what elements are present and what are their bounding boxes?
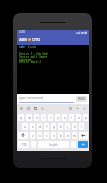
- button[interactable]: type command: [19, 95, 74, 103]
- staticText: e: [36, 116, 38, 120]
- button[interactable]: f: [44, 123, 49, 130]
- button[interactable]: y: [55, 114, 60, 121]
- button[interactable]: c: [44, 132, 49, 139]
- staticText: RUN: [78, 97, 85, 101]
- button[interactable]: h: [58, 123, 63, 130]
- button[interactable]: Enter: [78, 141, 88, 148]
- button[interactable]: s: [30, 123, 35, 130]
- button[interactable]: More: [75, 106, 80, 111]
- staticText: x: [39, 134, 41, 138]
- button[interactable]: q: [18, 114, 24, 121]
- staticText: ABB: [19, 37, 27, 42]
- button[interactable]: z: [30, 132, 35, 139]
- staticText: f: [46, 125, 48, 129]
- button[interactable]: Back: [19, 106, 24, 111]
- staticText: g: [53, 125, 55, 129]
- staticText: m: [73, 134, 76, 138]
- staticText: y: [57, 116, 59, 120]
- staticText: h: [60, 125, 62, 129]
- staticText: r: [43, 116, 45, 120]
- staticText: j: [67, 125, 68, 129]
- button[interactable]: p: [83, 114, 88, 121]
- button[interactable]: Clipboard: [33, 106, 38, 111]
- staticText: k: [74, 125, 76, 129]
- button[interactable]: a: [22, 123, 28, 130]
- button[interactable]: .: [71, 141, 76, 148]
- staticText: a: [24, 125, 26, 129]
- button[interactable]: g: [51, 123, 56, 130]
- button[interactable]: n: [65, 132, 70, 139]
- button[interactable]: d: [37, 123, 42, 130]
- button[interactable]: w: [26, 114, 32, 121]
- button[interactable]: x: [37, 132, 42, 139]
- staticText: OTG: [32, 37, 41, 42]
- staticText: 2:30: [19, 30, 25, 34]
- staticText: ,: [33, 143, 34, 147]
- staticText: Device mult Gamet: [19, 55, 48, 59]
- button[interactable]: k: [72, 123, 77, 130]
- staticText: c: [46, 134, 48, 138]
- button[interactable]: Backspace: [79, 132, 88, 139]
- staticText: i: [71, 116, 72, 120]
- staticText: usb>: [19, 45, 26, 49]
- button[interactable]: RUN: [76, 96, 87, 102]
- staticText: lsusb: [26, 45, 37, 49]
- staticText: Device 1: Usb kbd: [19, 52, 48, 56]
- staticText: b: [60, 134, 62, 138]
- staticText: p: [85, 116, 87, 120]
- staticText: o: [78, 116, 80, 120]
- button[interactable]: o: [76, 114, 81, 121]
- staticText: ?123: [21, 143, 27, 147]
- button[interactable]: Voice input: [82, 106, 87, 111]
- button[interactable]: t: [48, 114, 53, 121]
- staticText: nsboard: [19, 58, 31, 62]
- staticText: v: [53, 134, 55, 138]
- button[interactable]: i: [69, 114, 74, 121]
- button[interactable]: Search: [26, 106, 31, 111]
- button[interactable]: Shift: [18, 132, 28, 139]
- staticText: type command: [19, 95, 43, 100]
- button[interactable]: r: [41, 114, 46, 121]
- staticText: q: [20, 116, 22, 120]
- staticText: t: [50, 116, 52, 120]
- button[interactable]: j: [65, 123, 70, 130]
- staticText: .: [73, 143, 74, 147]
- button[interactable]: ,: [31, 141, 36, 148]
- button[interactable]: e: [34, 114, 39, 121]
- button[interactable]: l: [79, 123, 84, 130]
- staticText: l: [81, 125, 82, 129]
- staticText: w: [28, 116, 31, 120]
- button[interactable]: u: [62, 114, 67, 121]
- button[interactable]: b: [58, 132, 63, 139]
- staticText: d: [39, 125, 41, 129]
- button[interactable]: m: [72, 132, 77, 139]
- button[interactable]: ?123: [18, 141, 29, 148]
- button[interactable]: v: [51, 132, 56, 139]
- button[interactable]: Emoji: [40, 106, 45, 111]
- staticText: s: [32, 125, 34, 129]
- staticText: n: [67, 134, 69, 138]
- staticText: Device kbrd 2: [19, 60, 41, 64]
- staticText: u: [64, 116, 66, 120]
- button[interactable]: English: [38, 141, 69, 148]
- button[interactable]: Settings: [68, 106, 73, 111]
- staticText: English: [49, 143, 58, 147]
- staticText: z: [32, 134, 34, 138]
